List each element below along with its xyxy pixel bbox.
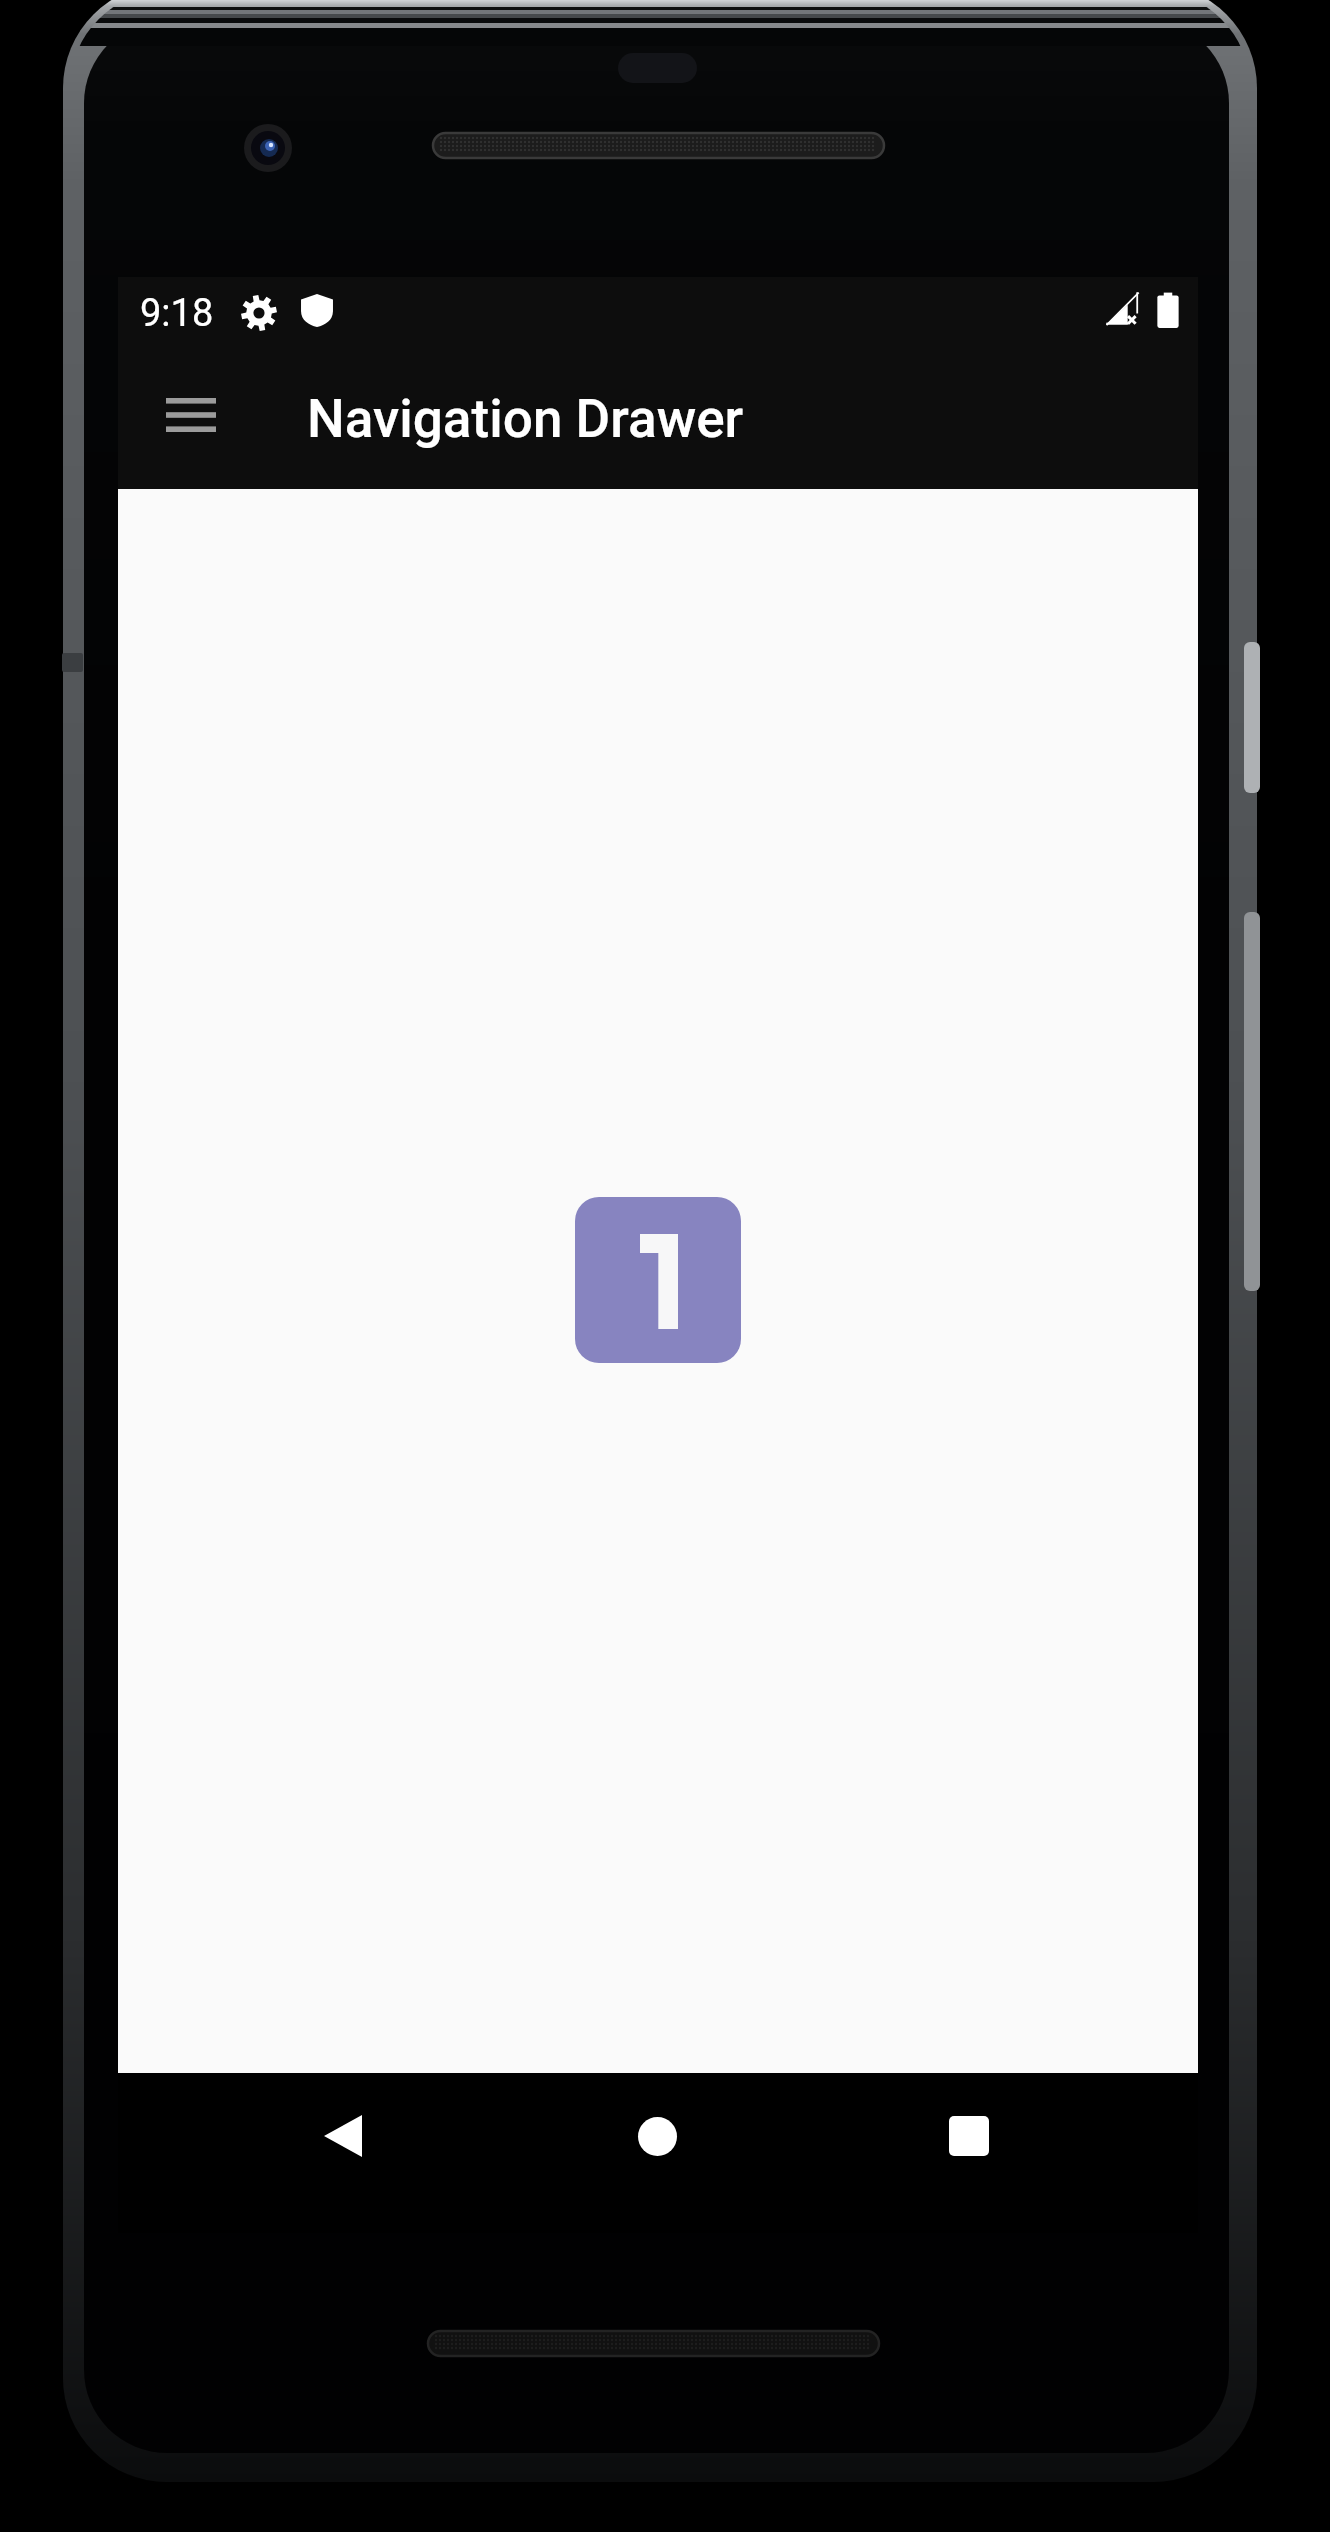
- staticText: 9:18: [140, 291, 214, 336]
- button[interactable]: Open navigation drawer: [142, 373, 234, 465]
- button[interactable]: Recent apps: [909, 2073, 1029, 2199]
- button[interactable]: Home: [597, 2073, 717, 2199]
- button[interactable]: Back: [283, 2073, 403, 2199]
- button[interactable]: Page 1: [575, 1197, 741, 1363]
- staticText: Navigation Drawer: [307, 388, 744, 450]
